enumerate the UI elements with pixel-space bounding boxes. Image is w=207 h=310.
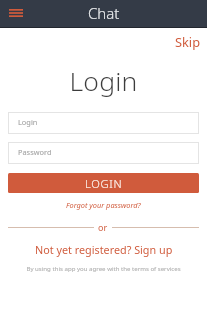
staticText: Not yet registered? Sign up	[35, 242, 173, 257]
staticText: By using this app you agree with the ter…	[0, 264, 207, 272]
button[interactable]: LOGIN	[8, 173, 199, 193]
staticText: Login	[18, 117, 38, 127]
staticText: Forgot your password?	[66, 200, 141, 210]
button[interactable]: Login	[8, 112, 199, 134]
button[interactable]: Skip	[171, 30, 205, 53]
button[interactable]: Not yet registered? Sign up	[29, 240, 179, 259]
staticText: Skip	[175, 33, 201, 50]
button[interactable]: Password	[8, 142, 199, 164]
staticText: LOGIN	[85, 176, 123, 191]
button[interactable]: Forgot your password?	[60, 198, 147, 212]
staticText: or	[98, 221, 108, 233]
staticText: Password	[18, 147, 52, 157]
staticText: Chat	[88, 3, 120, 23]
staticText: Login	[0, 63, 207, 99]
button[interactable]: Open navigation menu	[4, 1, 28, 25]
